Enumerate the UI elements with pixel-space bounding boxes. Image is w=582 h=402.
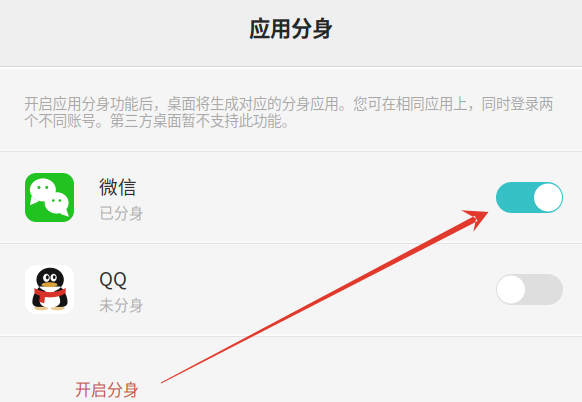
staticText: 已分身	[99, 201, 144, 223]
button[interactable]: QQ 分身未开启	[496, 274, 563, 305]
staticText: 开启分身	[75, 377, 139, 400]
button[interactable]: QQ	[0, 244, 582, 335]
staticText: 微信	[99, 172, 137, 199]
button[interactable]: 应用分身	[0, 10, 582, 44]
staticText: QQ	[99, 264, 127, 291]
staticText: 个不同账号。第三方桌面暂不支持此功能。	[24, 109, 296, 130]
button[interactable]: 微信 分身已开启	[496, 182, 563, 213]
staticText: 未分身	[99, 293, 144, 315]
button[interactable]: 微信	[0, 152, 582, 243]
staticText: 应用分身	[249, 12, 333, 42]
staticText: 开启应用分身功能后，桌面将生成对应的分身应用。您可在相同应用上，同时登录两	[24, 92, 554, 113]
